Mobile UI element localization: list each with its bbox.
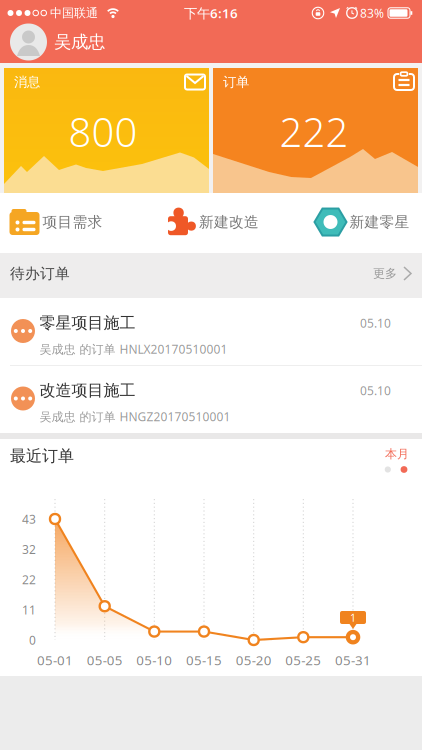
staticText: 项目需求 [42, 213, 102, 231]
staticText: 改造项目施工 [39, 381, 135, 400]
button[interactable]: 改造项目施工 [0, 365, 422, 433]
staticText: 05-20 [236, 651, 272, 669]
staticText: 05-05 [87, 651, 123, 669]
staticText: 吴成忠 的订单 HNLX20170510001 [39, 341, 227, 357]
staticText: 订单 [223, 74, 249, 90]
staticText: 下午6:16 [184, 4, 238, 22]
button[interactable]: 零星项目施工 [0, 298, 422, 366]
button[interactable]: 新建改造 [167, 207, 259, 236]
staticText: 05.10 [360, 382, 391, 398]
button[interactable]: 本月 [385, 447, 409, 461]
staticText: 吴成忠 的订单 HNGZ20170510001 [39, 408, 230, 424]
staticText: 中国联通 [50, 6, 98, 20]
staticText: 05-31 [335, 651, 371, 669]
staticText: 05-25 [285, 651, 321, 669]
staticText: 1 [350, 610, 356, 625]
staticText: 05-15 [186, 651, 222, 669]
staticText: 32 [22, 541, 36, 557]
staticText: 待办订单 [10, 264, 70, 282]
button[interactable]: 新建零星 [314, 208, 409, 235]
staticText: 本月 [385, 447, 409, 461]
staticText: 0 [29, 632, 36, 648]
staticText: 83% [360, 5, 384, 21]
staticText: 800 [68, 105, 137, 158]
staticText: 新建零星 [349, 213, 409, 231]
staticText: 43 [22, 511, 36, 527]
staticText: 05-10 [136, 651, 172, 669]
staticText: 05.10 [360, 315, 391, 331]
staticText: 22 [22, 571, 36, 587]
staticText: 消息 [14, 74, 40, 90]
button[interactable]: 消息 [4, 68, 209, 193]
staticText: 05-01 [37, 651, 73, 669]
staticText: 222 [279, 105, 348, 158]
staticText: 11 [22, 602, 36, 618]
staticText: 最近订单 [10, 446, 74, 466]
staticText: 新建改造 [199, 213, 259, 231]
button[interactable]: 吴成忠 [10, 23, 105, 60]
button[interactable]: 项目需求 [9, 209, 102, 235]
button[interactable]: 订单 [213, 68, 418, 193]
staticText: 更多 [373, 266, 397, 281]
staticText: 吴成忠 [54, 31, 105, 53]
button[interactable]: 更多 [373, 266, 411, 281]
staticText: 零星项目施工 [39, 313, 135, 333]
